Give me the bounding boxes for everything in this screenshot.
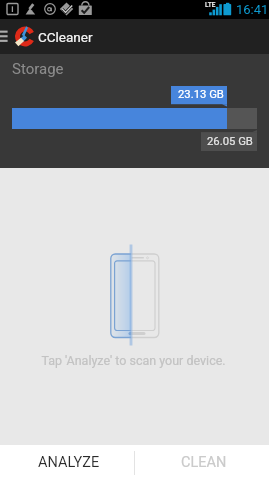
staticText: CLEAN [181,454,227,471]
staticText: 16:41 [236,2,269,17]
staticText: 26.05 GB [207,135,253,148]
staticText: Tap 'Analyze' to scan your device. [0,353,268,368]
staticText: CCleaner [38,29,93,45]
staticText: 23.13 GB [178,88,224,101]
button[interactable]: ANALYZE [0,445,134,480]
staticText: Storage [12,60,64,78]
button[interactable]: Open navigation drawer [0,19,15,54]
staticText: LTE [205,1,216,9]
staticText: ANALYZE [38,454,100,471]
button[interactable]: CLEAN [135,445,269,480]
